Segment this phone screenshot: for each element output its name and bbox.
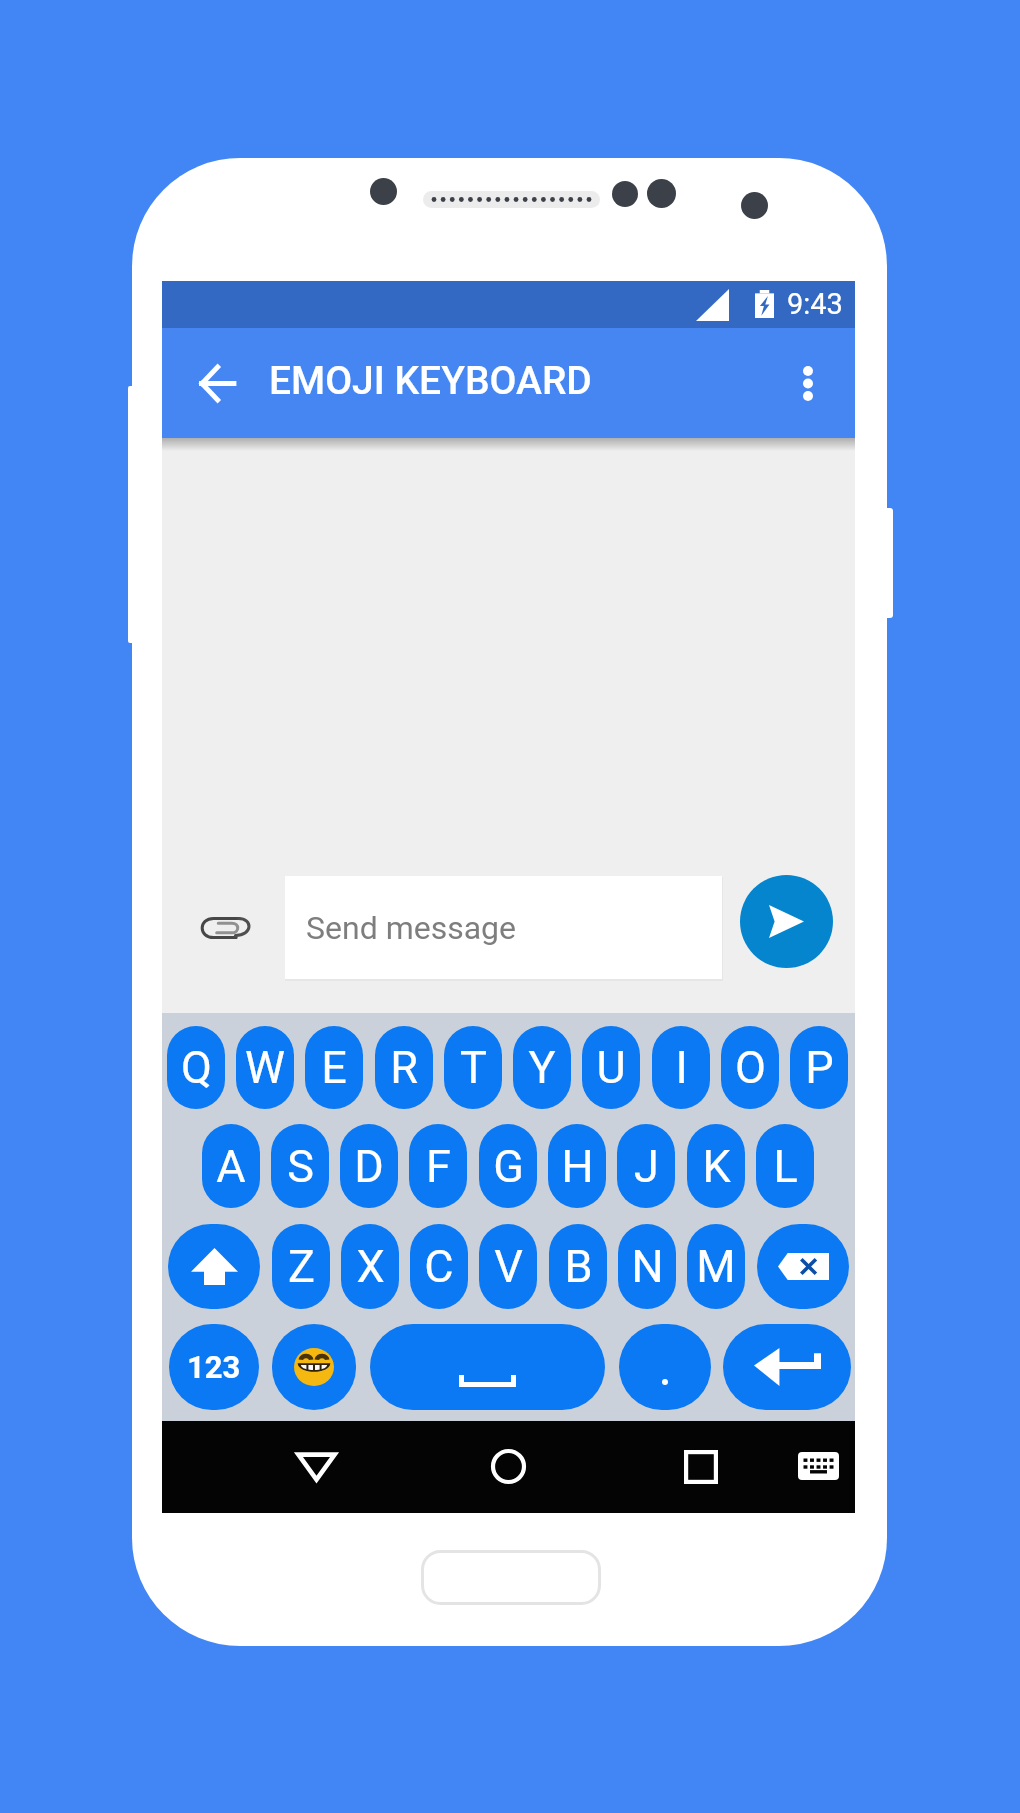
button[interactable]: Emoji (272, 1324, 356, 1410)
staticText: U (596, 1041, 626, 1094)
button[interactable]: Enter (723, 1324, 851, 1410)
button[interactable]: N (618, 1224, 676, 1309)
button[interactable]: X (341, 1224, 399, 1309)
button[interactable]: Send message (285, 876, 722, 979)
button[interactable]: Recents (671, 1437, 731, 1497)
button[interactable]: T (444, 1026, 502, 1109)
staticText: D (354, 1140, 384, 1193)
staticText: K (702, 1140, 731, 1193)
staticText: B (564, 1240, 593, 1293)
button[interactable]: Period (619, 1324, 711, 1410)
staticText: M (696, 1240, 736, 1293)
staticText: O (735, 1041, 766, 1094)
button[interactable]: A (202, 1124, 260, 1208)
button[interactable]: Y (513, 1026, 571, 1109)
staticText: E (321, 1041, 347, 1094)
staticText: N (631, 1240, 664, 1293)
staticText: T (460, 1041, 487, 1094)
button[interactable]: H (548, 1124, 606, 1208)
button[interactable]: D (340, 1124, 398, 1208)
button[interactable]: Numbers (169, 1324, 259, 1410)
button[interactable]: J (617, 1124, 675, 1208)
button[interactable]: W (236, 1026, 294, 1109)
staticText: P (805, 1041, 834, 1094)
button[interactable]: Switch keyboard (788, 1436, 848, 1496)
button[interactable]: C (410, 1224, 468, 1309)
button[interactable]: E (305, 1026, 363, 1109)
button[interactable]: P (790, 1026, 848, 1109)
button[interactable]: Home (478, 1436, 538, 1496)
button[interactable]: I (652, 1026, 710, 1109)
staticText: 9:43 (787, 287, 843, 321)
staticText: C (424, 1240, 454, 1293)
button[interactable]: K (687, 1124, 745, 1208)
button[interactable]: Back (286, 1436, 346, 1496)
button[interactable]: O (721, 1026, 779, 1109)
staticText: EMOJI KEYBOARD (269, 358, 592, 404)
staticText: Send message (306, 909, 517, 947)
staticText: V (494, 1240, 523, 1293)
staticText: I (675, 1041, 688, 1094)
staticText: H (561, 1140, 594, 1193)
button[interactable]: Backspace (757, 1224, 849, 1309)
button[interactable]: F (409, 1124, 467, 1208)
button[interactable]: G (479, 1124, 537, 1208)
button[interactable]: V (479, 1224, 537, 1309)
staticText: R (390, 1041, 418, 1094)
button[interactable]: More options (777, 352, 839, 414)
button[interactable]: M (687, 1224, 745, 1309)
button[interactable]: U (582, 1026, 640, 1109)
staticText: J (634, 1140, 659, 1193)
button[interactable]: Z (272, 1224, 330, 1309)
staticText: Q (181, 1041, 212, 1094)
button[interactable]: R (375, 1026, 433, 1109)
staticText: G (493, 1140, 524, 1193)
button[interactable]: L (756, 1124, 814, 1208)
button[interactable]: Back (184, 350, 250, 416)
staticText: Y (528, 1041, 556, 1094)
staticText: A (216, 1140, 246, 1193)
staticText: 123 (187, 1349, 241, 1385)
staticText: F (426, 1140, 451, 1193)
button[interactable]: Space (370, 1324, 605, 1410)
staticText: W (245, 1041, 285, 1094)
staticText: X (356, 1240, 385, 1293)
staticText: S (287, 1140, 314, 1193)
button[interactable]: Shift (168, 1224, 260, 1309)
button[interactable]: Attach (194, 898, 254, 958)
staticText: Z (288, 1240, 315, 1293)
button[interactable]: B (549, 1224, 607, 1309)
button[interactable]: Q (167, 1026, 225, 1109)
button[interactable]: Send (740, 875, 833, 968)
staticText: L (773, 1140, 798, 1193)
button[interactable]: S (271, 1124, 329, 1208)
